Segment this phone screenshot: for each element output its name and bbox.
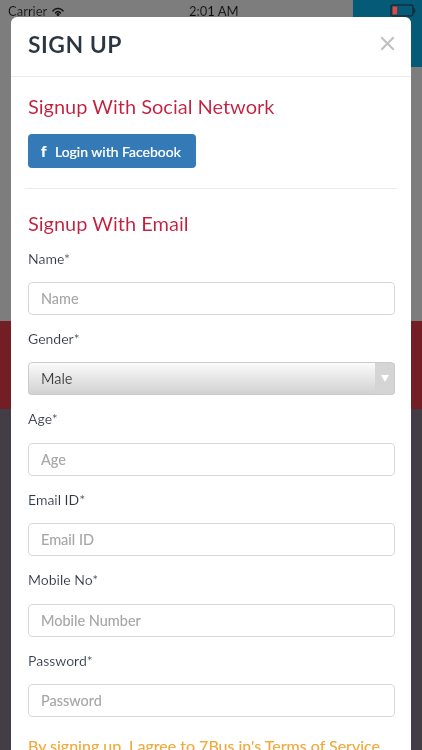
staticText: Carrier xyxy=(8,3,48,19)
staticText: Email ID xyxy=(41,531,95,548)
button[interactable]: f xyxy=(28,134,196,168)
staticText: SIGN UP xyxy=(28,30,122,58)
staticText: Male xyxy=(41,370,73,387)
staticText: Login with Facebook xyxy=(55,143,181,160)
staticText: Mobile Number xyxy=(41,612,141,629)
staticText: Age xyxy=(41,451,66,468)
button[interactable]: Close xyxy=(367,23,407,63)
staticText: Mobile No* xyxy=(28,571,99,588)
staticText: f xyxy=(41,142,47,160)
staticText: Name* xyxy=(28,250,70,267)
button[interactable]: Male xyxy=(28,362,395,395)
staticText: Gender* xyxy=(28,330,80,347)
button[interactable]: Password xyxy=(28,684,395,717)
staticText: By signing up, I agree to 7Bus in's Term… xyxy=(28,736,380,750)
staticText: Signup With Social Network xyxy=(28,94,275,118)
button[interactable]: Mobile Number xyxy=(28,604,395,637)
staticText: Name xyxy=(41,290,79,307)
staticText: Password xyxy=(41,692,102,709)
staticText: Age* xyxy=(28,410,58,427)
button[interactable]: Age xyxy=(28,443,395,476)
staticText: 2:01 AM xyxy=(189,3,239,19)
staticText: Signup With Email xyxy=(28,211,189,235)
button[interactable]: Email ID xyxy=(28,523,395,556)
button[interactable]: Name xyxy=(28,282,395,315)
staticText: Email ID* xyxy=(28,491,86,508)
staticText: Password* xyxy=(28,652,93,669)
